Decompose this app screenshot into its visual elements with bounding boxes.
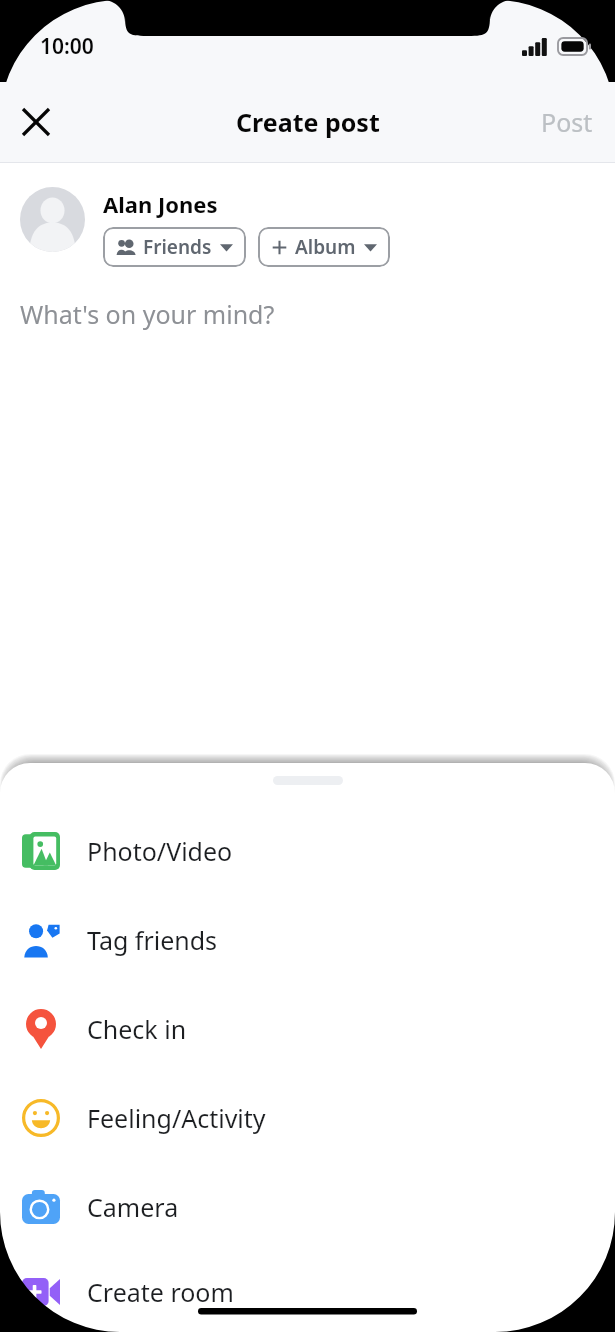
button[interactable]: Create room <box>0 1251 615 1332</box>
staticText: Photo/Video <box>87 834 233 868</box>
staticText: Album <box>295 234 356 260</box>
staticText: Camera <box>87 1190 179 1224</box>
button[interactable]: Album <box>258 227 390 267</box>
staticText: Post <box>541 105 593 139</box>
staticText: Feeling/Activity <box>87 1101 266 1135</box>
button[interactable]: Photo/Video <box>0 806 615 895</box>
button[interactable]: Close <box>8 94 64 150</box>
button[interactable]: Feeling/Activity <box>0 1073 615 1162</box>
staticText: Friends <box>143 234 212 260</box>
staticText: What's on your mind? <box>20 297 275 331</box>
staticText: Alan Jones <box>103 189 218 219</box>
staticText: 10:00 <box>40 32 94 61</box>
staticText: Tag friends <box>87 923 218 957</box>
button[interactable]: Post <box>531 97 603 147</box>
staticText: Create room <box>87 1275 234 1309</box>
button[interactable]: What's on your mind? <box>0 267 615 341</box>
button[interactable]: Friends <box>103 227 246 267</box>
button[interactable]: Camera <box>0 1162 615 1251</box>
button[interactable]: Tag friends <box>0 895 615 984</box>
staticText: Create post <box>236 105 380 139</box>
button[interactable]: Check in <box>0 984 615 1073</box>
staticText: Check in <box>87 1012 187 1046</box>
